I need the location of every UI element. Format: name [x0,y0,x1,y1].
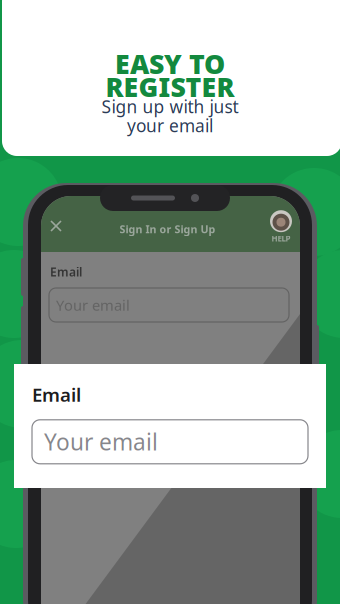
button[interactable]: Help [264,210,298,244]
staticText: Email [50,264,82,280]
staticText: Sign up with just [101,95,238,118]
button[interactable]: Close [41,211,71,241]
staticText: your email [127,114,213,137]
staticText: Your email [44,427,158,457]
staticText: EASY TO [115,46,225,81]
staticText: REGISTER [105,69,234,104]
staticText: Email [32,382,81,407]
button[interactable]: Your email [32,420,308,464]
staticText: Sign In or Sign Up [119,222,215,236]
staticText: Your email [56,295,130,315]
staticText: HELP [271,233,290,244]
